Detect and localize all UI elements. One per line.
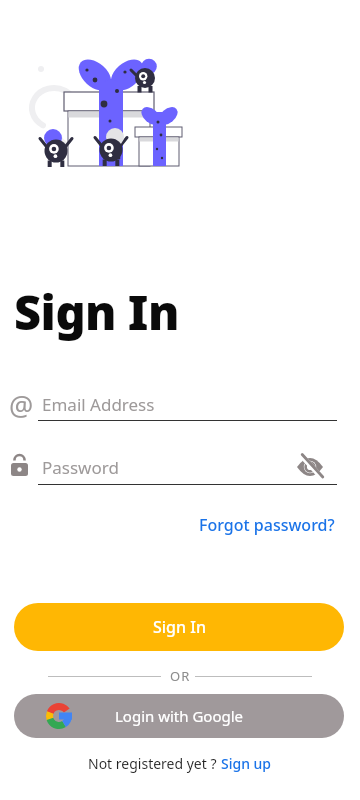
button[interactable]: Sign In: [14, 603, 344, 651]
staticText: Login with Google: [115, 706, 244, 726]
staticText: Email Address: [42, 393, 155, 416]
button[interactable]: [297, 455, 323, 479]
staticText: Password: [42, 456, 119, 479]
staticText: Sign In: [153, 616, 206, 638]
button[interactable]: Login with Google: [14, 694, 344, 738]
staticText: Sign In: [14, 280, 179, 344]
staticText: Not registered yet ?: [88, 754, 221, 773]
staticText: @: [9, 387, 34, 424]
button[interactable]: Sign up: [221, 754, 272, 773]
button[interactable]: Forgot password?: [199, 514, 335, 536]
staticText: OR: [170, 667, 191, 685]
